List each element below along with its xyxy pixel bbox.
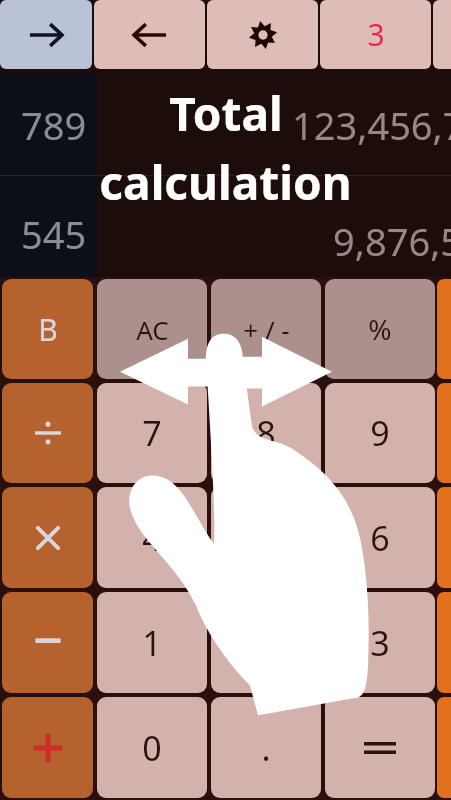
button[interactable]: More <box>433 0 451 69</box>
button[interactable]: 5 <box>211 487 321 588</box>
staticText: 6 <box>370 515 390 561</box>
button[interactable]: 2 <box>211 592 321 693</box>
button[interactable]: 8 <box>211 383 321 483</box>
button[interactable]: AC <box>97 279 207 379</box>
staticText: 8 <box>256 410 276 456</box>
staticText: 123,456,7 <box>292 99 451 151</box>
staticText: 9 <box>370 410 390 456</box>
staticText: 9,876,5 <box>333 215 451 267</box>
button[interactable]: Function <box>437 279 451 379</box>
button[interactable]: 9 <box>325 383 435 483</box>
button[interactable]: Multiply <box>2 487 93 588</box>
button[interactable]: 0 <box>97 697 207 798</box>
button[interactable]: Divide <box>2 383 93 483</box>
staticText: AC <box>136 312 169 347</box>
button[interactable]: Function <box>437 697 451 798</box>
button[interactable]: + / - <box>211 279 321 379</box>
staticText: 3 <box>367 14 385 55</box>
staticText: 4 <box>142 515 162 561</box>
button[interactable]: % <box>325 279 435 379</box>
staticText: 3 <box>370 620 390 666</box>
button[interactable]: Function <box>437 383 451 483</box>
staticText: Total <box>169 82 283 145</box>
staticText: 0 <box>142 725 162 771</box>
button[interactable]: Equals <box>325 697 435 798</box>
staticText: 545 <box>21 208 87 260</box>
button[interactable]: Plus <box>2 697 93 798</box>
button[interactable]: Back <box>94 0 205 69</box>
button[interactable]: 6 <box>325 487 435 588</box>
staticText: 1 <box>142 620 162 666</box>
button[interactable]: 3 <box>320 0 431 69</box>
button[interactable]: Function <box>437 592 451 693</box>
staticText: B <box>38 309 58 350</box>
button[interactable]: Forward <box>0 0 92 69</box>
staticText: + / - <box>243 312 290 347</box>
button[interactable]: 1 <box>97 592 207 693</box>
button[interactable]: Function <box>437 487 451 588</box>
button[interactable]: Settings <box>207 0 318 69</box>
staticText: calculation <box>99 151 352 214</box>
staticText: . <box>261 725 271 771</box>
button[interactable]: Minus <box>2 592 93 693</box>
button[interactable]: 3 <box>325 592 435 693</box>
staticText: 7 <box>142 410 162 456</box>
button[interactable]: B <box>2 279 93 379</box>
button[interactable]: 4 <box>97 487 207 588</box>
staticText: % <box>368 310 392 348</box>
button[interactable]: 7 <box>97 383 207 483</box>
staticText: 789 <box>21 99 87 151</box>
button[interactable]: . <box>211 697 321 798</box>
